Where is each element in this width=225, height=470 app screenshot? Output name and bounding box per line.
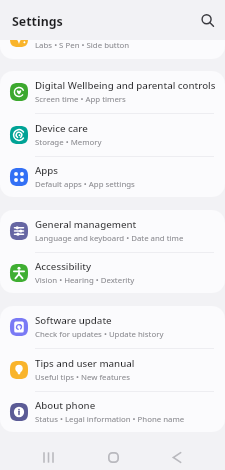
staticText: Default apps • App settings <box>35 179 135 190</box>
staticText: Settings <box>12 13 63 30</box>
staticText: Labs • S Pen • Side button <box>35 40 130 51</box>
staticText: Screen time • App timers <box>35 94 126 105</box>
staticText: Vision • Hearing • Dexterity <box>35 275 135 286</box>
button[interactable]: Search <box>194 7 220 33</box>
staticText: Status • Legal information • Phone name <box>35 414 185 425</box>
button[interactable]: Apps <box>0 157 225 197</box>
staticText: Tips and user manual <box>35 357 135 370</box>
staticText: Digital Wellbeing and parental controls <box>35 79 216 92</box>
staticText: Language and keyboard • Date and time <box>35 233 184 244</box>
staticText: Apps <box>35 164 59 177</box>
staticText: Device care <box>35 122 88 135</box>
staticText: About phone <box>35 399 96 412</box>
staticText: Software update <box>35 314 112 327</box>
button[interactable]: Digital Wellbeing and parental controls <box>0 71 225 113</box>
button[interactable]: Home <box>98 442 128 470</box>
button[interactable]: General management <box>0 210 225 252</box>
button[interactable]: Accessibility <box>0 253 225 293</box>
button[interactable]: Tips and user manual <box>0 349 225 391</box>
staticText: Accessibility <box>35 260 92 273</box>
staticText: General management <box>35 218 137 231</box>
staticText: Advanced features <box>35 25 122 38</box>
staticText: Storage • Memory <box>35 137 102 148</box>
staticText: Useful tips • New features <box>35 372 130 383</box>
button[interactable]: Software update <box>0 306 225 348</box>
button[interactable]: Recent apps <box>33 442 63 470</box>
button[interactable]: Advanced features <box>0 17 225 59</box>
button[interactable]: About phone <box>0 392 225 432</box>
button[interactable]: Back <box>162 442 192 470</box>
staticText: Check for updates • Update history <box>35 329 164 340</box>
button[interactable]: Device care <box>0 114 225 156</box>
